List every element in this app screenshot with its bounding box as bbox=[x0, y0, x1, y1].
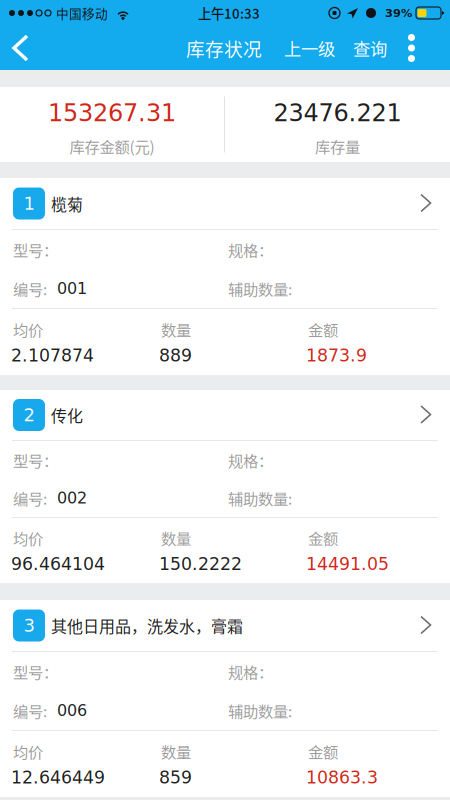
staticText: 编号: bbox=[13, 277, 47, 300]
staticText: 规格： bbox=[228, 238, 273, 261]
button[interactable]: 1 bbox=[0, 178, 450, 229]
button[interactable]: 2 bbox=[0, 390, 450, 440]
staticText: 均价 bbox=[13, 527, 43, 549]
staticText: 编号: bbox=[13, 487, 47, 509]
staticText: 上一级 bbox=[284, 35, 335, 61]
button[interactable]: 返回 bbox=[0, 26, 46, 70]
staticText: 库存金额(元) bbox=[69, 135, 154, 157]
staticText: 库存状况 bbox=[186, 34, 262, 61]
staticText: 12.646449 bbox=[11, 767, 105, 788]
staticText: 1873.9 bbox=[306, 345, 367, 366]
staticText: 辅助数量: bbox=[228, 487, 292, 509]
button[interactable]: 查询 bbox=[344, 26, 401, 70]
staticText: 其他日用品，洗发水，膏霜 bbox=[51, 614, 243, 637]
staticText: 数量 bbox=[161, 740, 191, 762]
staticText: 规格： bbox=[228, 660, 273, 683]
staticText: 3 bbox=[23, 615, 34, 636]
staticText: 10863.3 bbox=[306, 767, 378, 788]
staticText: 001 bbox=[57, 279, 87, 298]
staticText: 型号： bbox=[13, 238, 58, 261]
button[interactable]: 更多 bbox=[401, 26, 450, 70]
staticText: 编号: bbox=[13, 699, 47, 722]
staticText: 数量 bbox=[161, 318, 191, 340]
staticText: 39% bbox=[385, 6, 412, 20]
button[interactable]: 3 bbox=[0, 600, 450, 651]
staticText: 查询 bbox=[353, 35, 387, 61]
staticText: 榄菊 bbox=[51, 192, 83, 215]
staticText: 23476.221 bbox=[273, 99, 401, 127]
staticText: 规格： bbox=[228, 449, 273, 471]
staticText: 859 bbox=[159, 767, 192, 788]
staticText: 1 bbox=[23, 193, 34, 214]
staticText: 153267.31 bbox=[48, 99, 176, 127]
staticText: 889 bbox=[159, 345, 192, 366]
staticText: 均价 bbox=[13, 740, 43, 762]
staticText: 型号： bbox=[13, 660, 58, 683]
staticText: 辅助数量: bbox=[228, 277, 292, 300]
staticText: 上午10:33 bbox=[198, 3, 260, 23]
button[interactable]: 上一级 bbox=[262, 26, 344, 70]
staticText: 金额 bbox=[308, 527, 338, 549]
staticText: 150.2222 bbox=[159, 554, 242, 574]
staticText: 传化 bbox=[51, 403, 83, 427]
staticText: 002 bbox=[57, 489, 87, 507]
staticText: 14491.05 bbox=[306, 554, 389, 574]
staticText: 2 bbox=[23, 404, 34, 425]
staticText: 数量 bbox=[161, 527, 191, 549]
staticText: 金额 bbox=[308, 740, 338, 762]
staticText: 库存量 bbox=[315, 135, 360, 157]
staticText: 型号： bbox=[13, 449, 58, 471]
staticText: 2.107874 bbox=[11, 345, 94, 366]
staticText: 金额 bbox=[308, 318, 338, 340]
staticText: 辅助数量: bbox=[228, 699, 292, 722]
staticText: 006 bbox=[57, 701, 87, 720]
staticText: 中国移动 bbox=[56, 4, 108, 22]
staticText: 均价 bbox=[13, 318, 43, 340]
staticText: 96.464104 bbox=[11, 554, 105, 574]
